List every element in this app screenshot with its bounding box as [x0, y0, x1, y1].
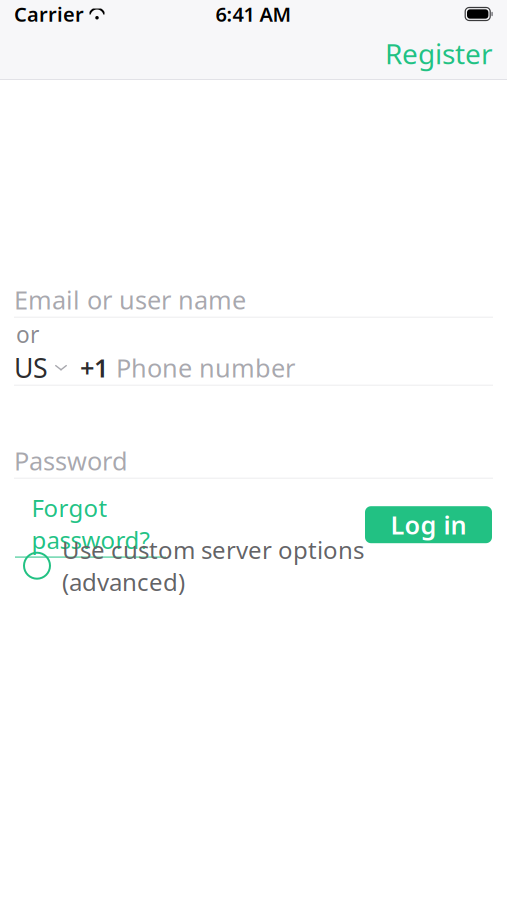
staticText: Log in [390, 508, 466, 541]
button[interactable]: Select country code [14, 346, 68, 389]
button[interactable]: Use custom server options (advanced) [0, 545, 507, 587]
staticText: Carrier [14, 1, 84, 27]
staticText: Forgot password? [31, 492, 149, 555]
staticText: Password [14, 444, 128, 477]
staticText: 6:41 AM [215, 1, 291, 27]
button[interactable]: Log in [365, 506, 492, 543]
staticText: Email or user name [14, 283, 246, 316]
staticText: +1 [80, 351, 108, 384]
staticText: Phone number [116, 351, 295, 384]
staticText: Register [385, 35, 493, 72]
button[interactable]: Forgot password? [15, 488, 166, 561]
staticText: US [14, 350, 48, 385]
button[interactable]: Register [371, 25, 507, 82]
staticText: Use custom server options (advanced) [62, 534, 364, 597]
staticText: or [16, 319, 39, 349]
